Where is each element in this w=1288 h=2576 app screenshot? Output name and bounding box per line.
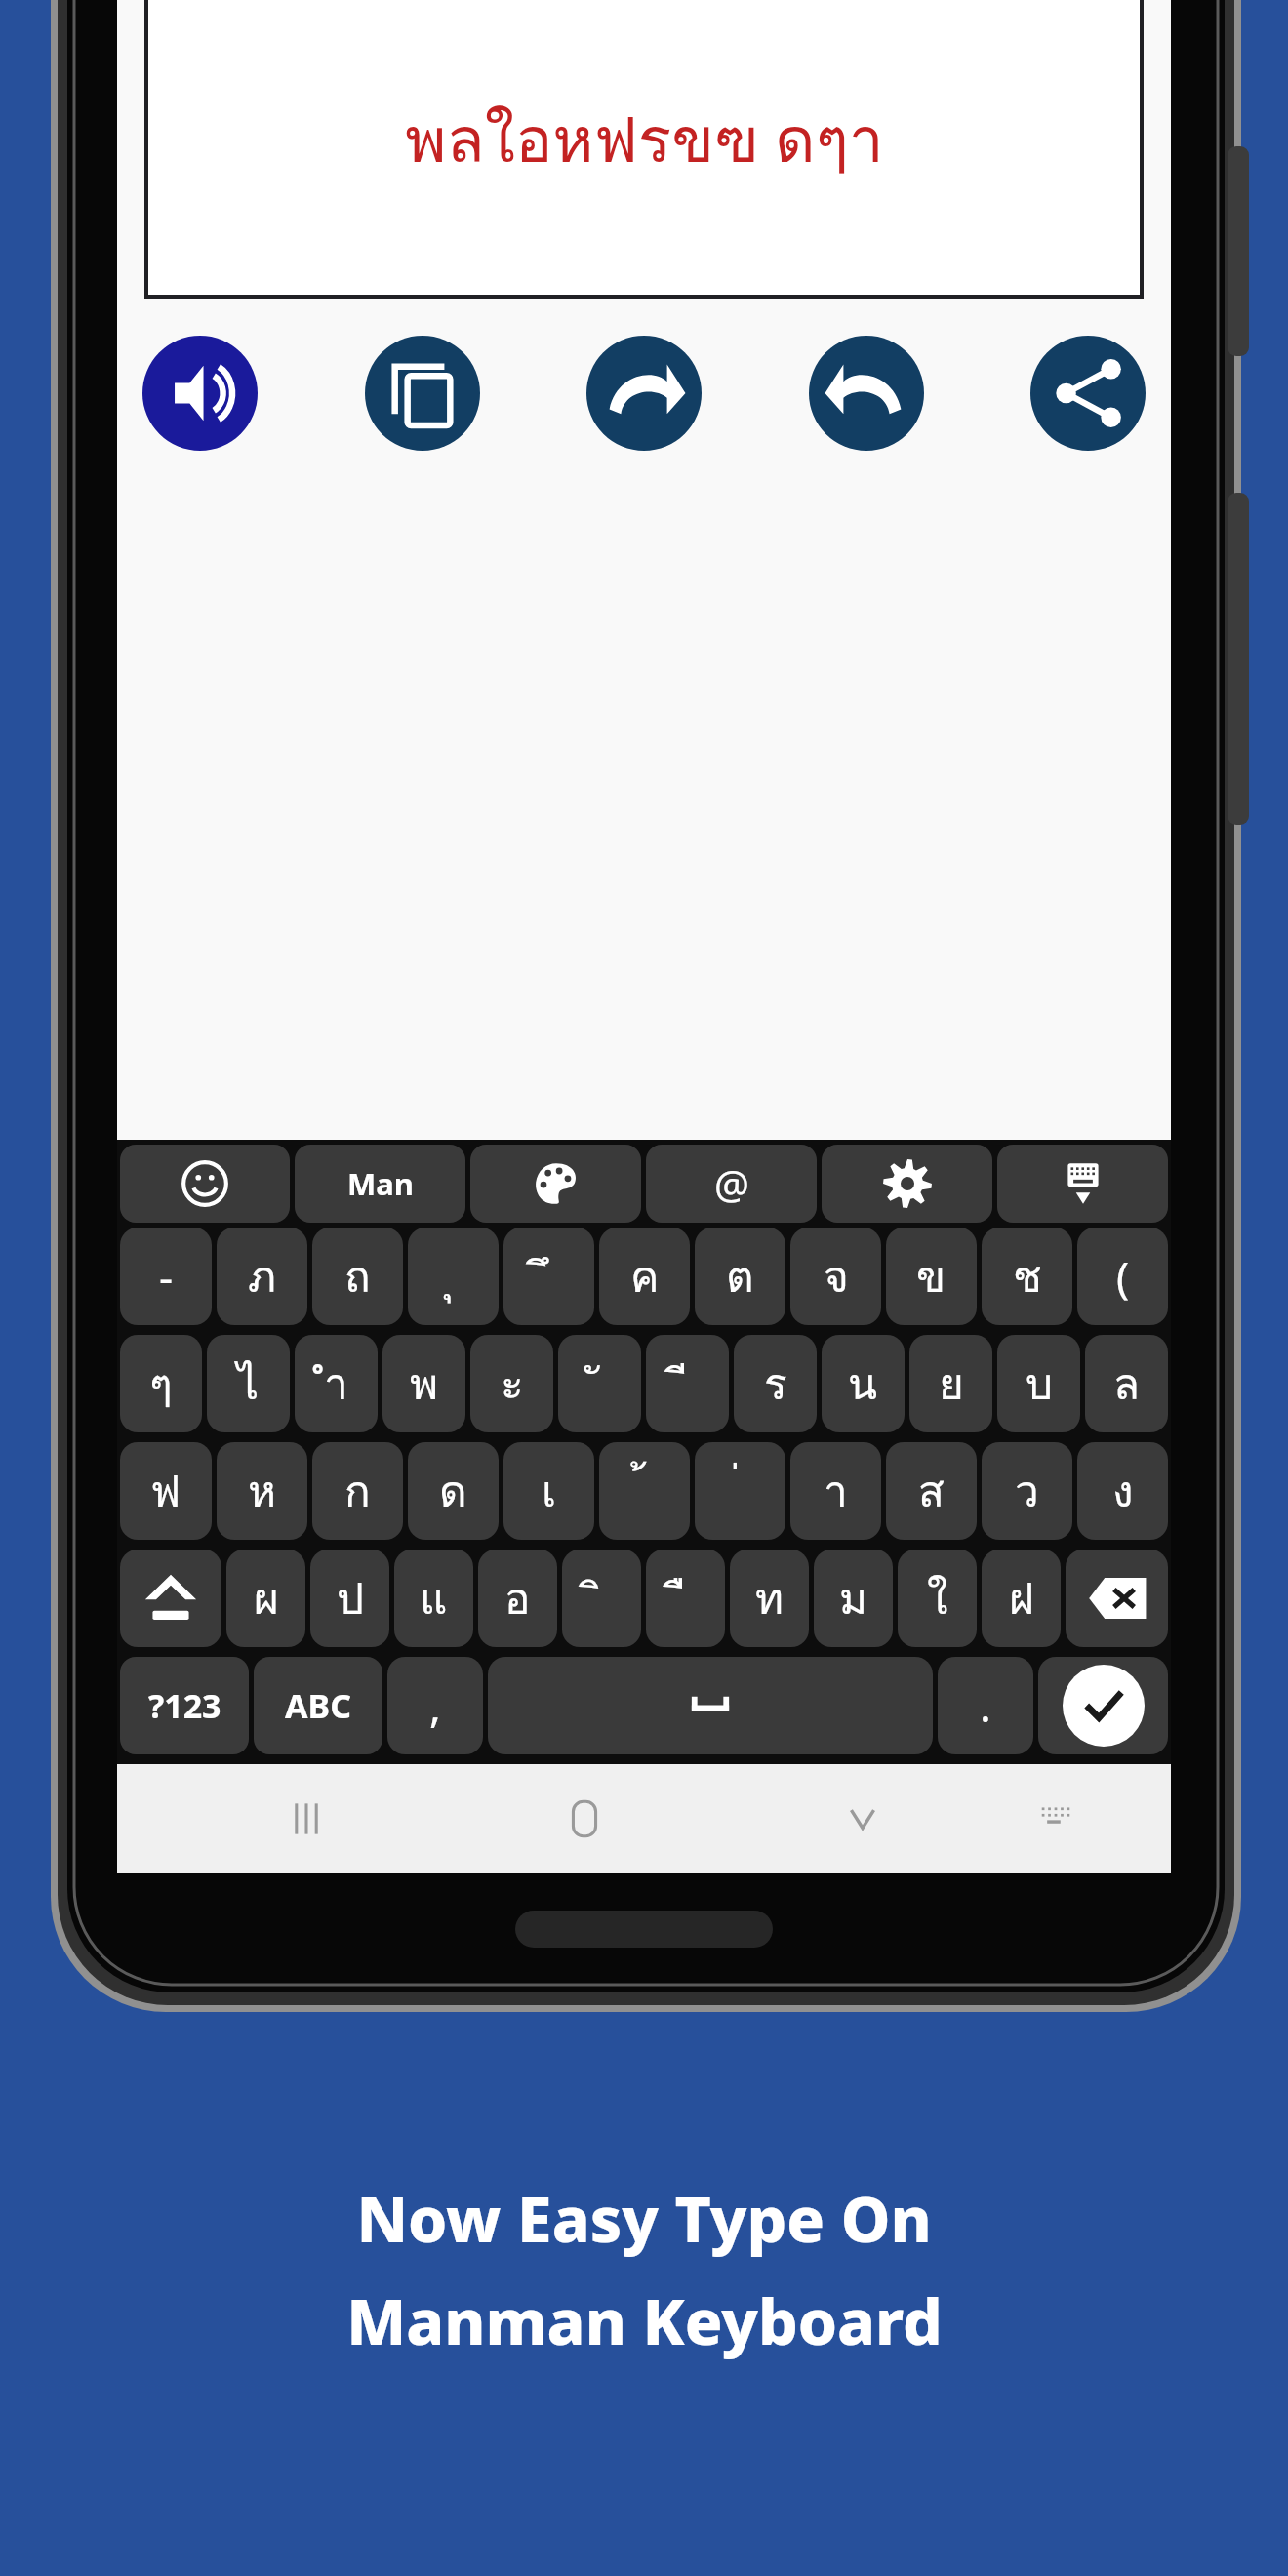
button[interactable]: Copy xyxy=(365,336,480,451)
staticText: ะ xyxy=(501,1349,524,1418)
button[interactable]: ABC xyxy=(254,1657,382,1754)
button[interactable]: ภ xyxy=(217,1228,307,1325)
button[interactable]: , xyxy=(387,1657,483,1754)
button[interactable]: ก xyxy=(312,1442,403,1540)
button[interactable]: แ xyxy=(394,1550,473,1647)
staticText: ำ xyxy=(324,1349,348,1418)
button[interactable]: น xyxy=(822,1335,905,1432)
button[interactable]: ย xyxy=(909,1335,992,1432)
staticText: ว xyxy=(1015,1457,1039,1525)
staticText: จ xyxy=(824,1242,849,1310)
button[interactable]: พลใอหฟรขฃ ดๆา xyxy=(146,0,1142,297)
staticText: ถ xyxy=(344,1242,371,1310)
button[interactable]: Undo xyxy=(809,336,924,451)
staticText: ค xyxy=(630,1242,660,1310)
button[interactable]: ห xyxy=(217,1442,307,1540)
staticText: ย xyxy=(939,1349,964,1418)
staticText: ฝ xyxy=(1009,1564,1034,1632)
staticText: ๆ xyxy=(149,1349,173,1418)
button[interactable]: Settings xyxy=(822,1145,992,1223)
button[interactable]: จ xyxy=(790,1228,881,1325)
button[interactable]: ( xyxy=(1077,1228,1168,1325)
button[interactable]: ฝ xyxy=(982,1550,1061,1647)
button[interactable]: า xyxy=(790,1442,881,1540)
button[interactable]: ั xyxy=(558,1335,641,1432)
staticText: ส xyxy=(918,1457,945,1525)
button[interactable]: ิ xyxy=(562,1550,641,1647)
button[interactable]: - xyxy=(120,1228,212,1325)
button[interactable]: อ xyxy=(478,1550,557,1647)
staticText: , xyxy=(429,1676,441,1735)
button[interactable]: Speak xyxy=(142,336,258,451)
staticText: ข xyxy=(916,1242,946,1310)
button[interactable]: ป xyxy=(310,1550,389,1647)
button[interactable]: ผ xyxy=(226,1550,305,1647)
staticText: . xyxy=(980,1676,991,1735)
button[interactable]: ท xyxy=(730,1550,809,1647)
button[interactable]: @ xyxy=(646,1145,817,1223)
button[interactable]: Enter xyxy=(1038,1657,1168,1754)
button[interactable]: ๆ xyxy=(120,1335,202,1432)
button[interactable]: . xyxy=(938,1657,1033,1754)
button[interactable]: ะ xyxy=(470,1335,553,1432)
staticText: ด xyxy=(439,1457,467,1525)
staticText: ช xyxy=(1013,1242,1042,1310)
button[interactable]: ช xyxy=(982,1228,1072,1325)
button[interactable]: ส xyxy=(886,1442,977,1540)
staticText: เ xyxy=(542,1457,557,1525)
staticText: ภ xyxy=(248,1242,277,1310)
button[interactable]: ี xyxy=(646,1335,729,1432)
button[interactable]: พ xyxy=(382,1335,465,1432)
button[interactable]: ไ xyxy=(207,1335,290,1432)
button[interactable]: เ xyxy=(503,1442,594,1540)
staticText: ล xyxy=(1113,1349,1140,1418)
staticText: ( xyxy=(1116,1247,1130,1306)
button[interactable]: Space xyxy=(488,1657,933,1754)
button[interactable]: Emoji xyxy=(120,1145,290,1223)
button[interactable]: บ xyxy=(997,1335,1080,1432)
button[interactable]: ่ xyxy=(695,1442,785,1540)
staticText: ร xyxy=(764,1349,787,1418)
button[interactable]: ?123 xyxy=(120,1657,249,1754)
button[interactable]: Home xyxy=(530,1764,639,1873)
button[interactable]: ต xyxy=(695,1228,785,1325)
button[interactable]: ม xyxy=(814,1550,893,1647)
button[interactable]: ำ xyxy=(295,1335,378,1432)
button[interactable]: ง xyxy=(1077,1442,1168,1540)
staticText: ใ xyxy=(927,1564,948,1632)
button[interactable]: ล xyxy=(1085,1335,1168,1432)
staticText: อ xyxy=(504,1564,531,1632)
button[interactable]: ุ xyxy=(408,1228,499,1325)
button[interactable]: Recents xyxy=(252,1764,361,1873)
staticText: ง xyxy=(1112,1457,1134,1525)
button[interactable]: ึ xyxy=(503,1228,594,1325)
button[interactable]: Share xyxy=(1030,336,1146,451)
button[interactable]: ื xyxy=(646,1550,725,1647)
staticText: Manman Keyboard xyxy=(346,2278,943,2363)
button[interactable]: ใ xyxy=(898,1550,977,1647)
button[interactable]: Shift xyxy=(120,1550,221,1647)
staticText: Man xyxy=(347,1163,414,1204)
button[interactable]: ค xyxy=(599,1228,690,1325)
button[interactable]: Backspace xyxy=(1066,1550,1168,1647)
button[interactable]: Theme xyxy=(470,1145,641,1223)
staticText: ก xyxy=(344,1457,371,1525)
button[interactable]: ้ xyxy=(599,1442,690,1540)
button[interactable]: Change keyboard xyxy=(997,1145,1168,1223)
button[interactable]: Man xyxy=(295,1145,465,1223)
button[interactable]: Hide keyboard xyxy=(1001,1764,1110,1873)
button[interactable]: ข xyxy=(886,1228,977,1325)
staticText: า xyxy=(824,1457,848,1525)
button[interactable]: ถ xyxy=(312,1228,403,1325)
staticText: ?123 xyxy=(148,1683,221,1728)
button[interactable]: Back xyxy=(808,1764,917,1873)
button[interactable]: ร xyxy=(734,1335,817,1432)
button[interactable]: ด xyxy=(408,1442,499,1540)
staticText: ต xyxy=(726,1242,754,1310)
button[interactable]: ฟ xyxy=(120,1442,212,1540)
staticText: ห xyxy=(248,1457,277,1525)
button[interactable]: ว xyxy=(982,1442,1072,1540)
button[interactable]: Redo xyxy=(586,336,702,451)
staticText: Now Easy Type On xyxy=(356,2176,932,2261)
staticText: ผ xyxy=(254,1564,279,1632)
